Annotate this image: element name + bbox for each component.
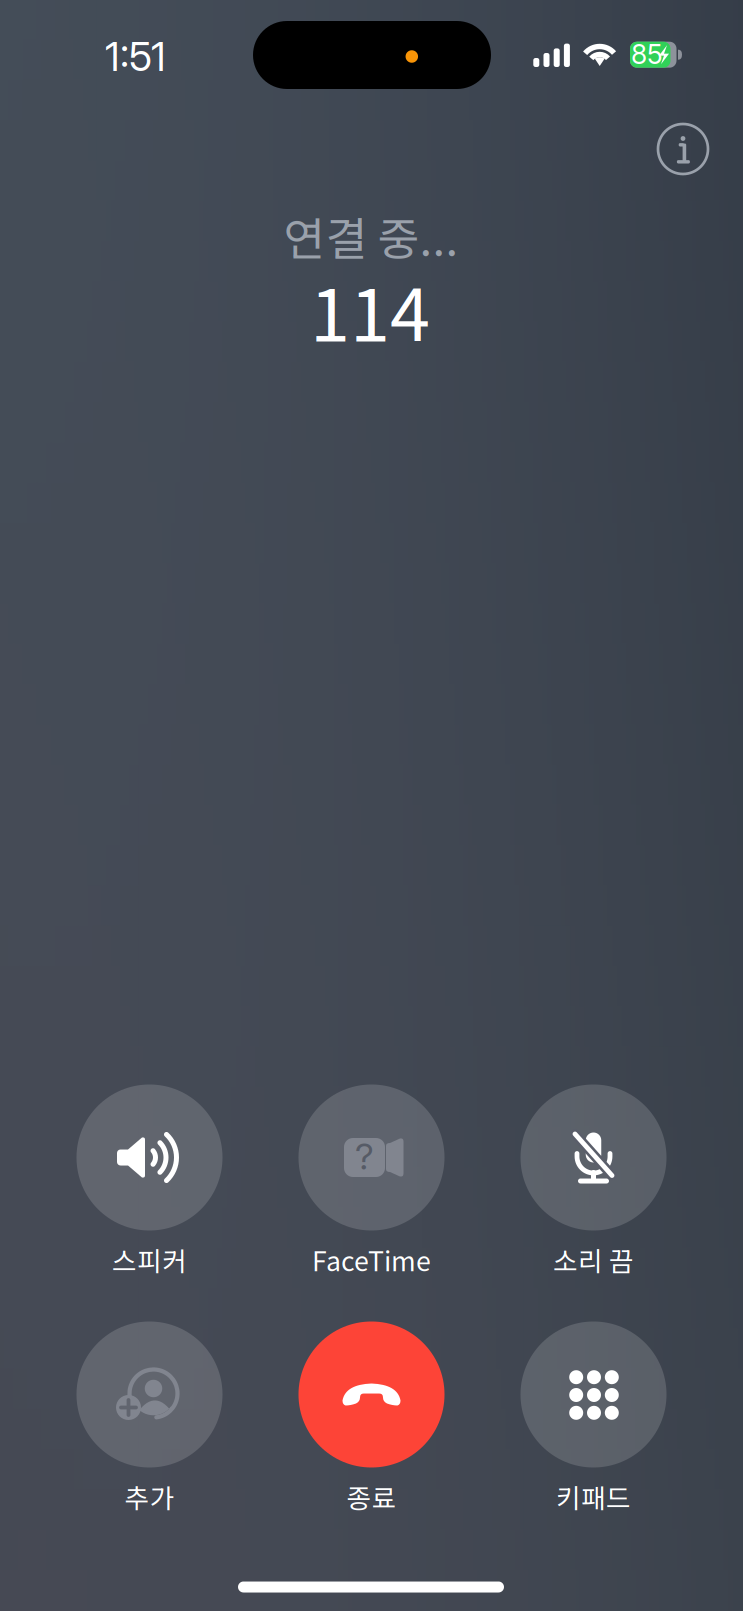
button[interactable]: 키패드 [493, 1321, 693, 1523]
staticText: ? [355, 1135, 374, 1178]
staticText: 85 [631, 38, 663, 70]
staticText: 추가 [124, 1477, 174, 1516]
button[interactable]: ? [271, 1084, 471, 1286]
button[interactable]: 소리 끔 [493, 1084, 693, 1286]
staticText: 스피커 [112, 1240, 187, 1279]
staticText: 키패드 [556, 1477, 631, 1516]
button[interactable]: 종료 [271, 1321, 471, 1523]
staticText: 1:51 [105, 32, 166, 81]
staticText: 종료 [346, 1477, 396, 1516]
staticText: 연결 중... [283, 203, 458, 269]
staticText: 소리 끔 [553, 1240, 634, 1279]
staticText: FaceTime [312, 1240, 431, 1279]
button[interactable]: 추가 [49, 1321, 249, 1523]
staticText: 114 [310, 258, 430, 362]
button[interactable]: 스피커 [49, 1084, 249, 1286]
button[interactable]: Call info [647, 113, 719, 185]
